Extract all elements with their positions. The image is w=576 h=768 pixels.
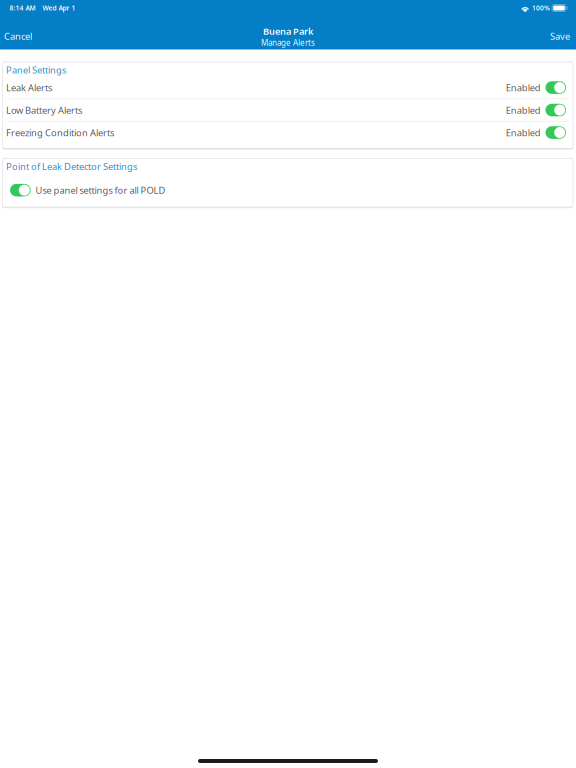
staticText: Enabled — [506, 126, 541, 139]
staticText: Enabled — [506, 81, 541, 94]
staticText: Low Battery Alerts — [6, 104, 82, 116]
button[interactable]: Use panel settings for all POLD — [2, 179, 573, 201]
staticText: Point of Leak Detector Settings — [6, 160, 137, 173]
staticText: Panel Settings — [6, 64, 66, 76]
staticText: Wed Apr 1 — [42, 4, 75, 12]
staticText: Leak Alerts — [6, 81, 52, 94]
staticText: Buena Park — [263, 25, 313, 37]
staticText: Save — [550, 30, 570, 42]
button[interactable]: Leak Alerts — [2, 77, 573, 98]
staticText: Enabled — [506, 104, 541, 116]
button[interactable]: Save — [544, 18, 576, 47]
staticText: Freezing Condition Alerts — [6, 126, 114, 139]
staticText: Cancel — [4, 30, 32, 42]
staticText: 100% — [532, 4, 550, 12]
button[interactable]: Freezing Condition Alerts — [2, 122, 573, 143]
staticText: 8:14 AM — [9, 4, 35, 12]
button[interactable]: Low Battery Alerts — [2, 99, 573, 121]
staticText: Manage Alerts — [261, 37, 315, 48]
button[interactable]: Cancel — [0, 18, 38, 47]
staticText: Use panel settings for all POLD — [36, 184, 166, 196]
